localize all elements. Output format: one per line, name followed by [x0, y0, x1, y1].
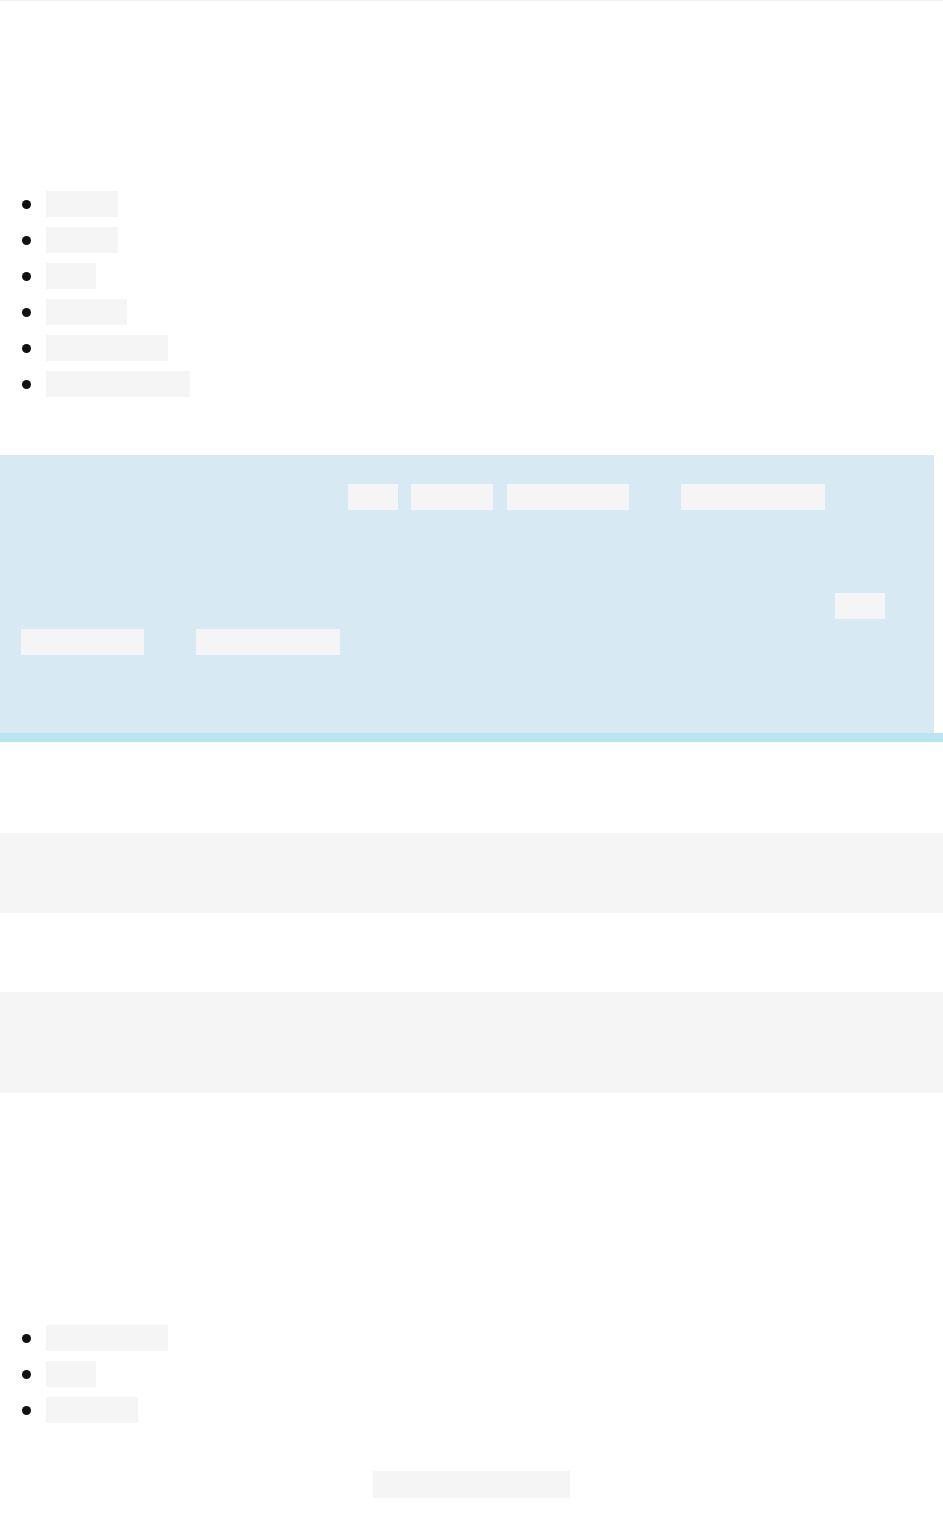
button[interactable]: [0, 1392, 943, 1428]
button[interactable]: [0, 294, 943, 330]
button[interactable]: [0, 330, 943, 366]
button[interactable]: [0, 366, 943, 402]
button[interactable]: Highlighted section: [0, 455, 934, 733]
button[interactable]: [0, 1356, 943, 1392]
button[interactable]: [0, 222, 943, 258]
button[interactable]: [0, 258, 943, 294]
button[interactable]: [0, 1320, 943, 1356]
button[interactable]: [0, 186, 943, 222]
